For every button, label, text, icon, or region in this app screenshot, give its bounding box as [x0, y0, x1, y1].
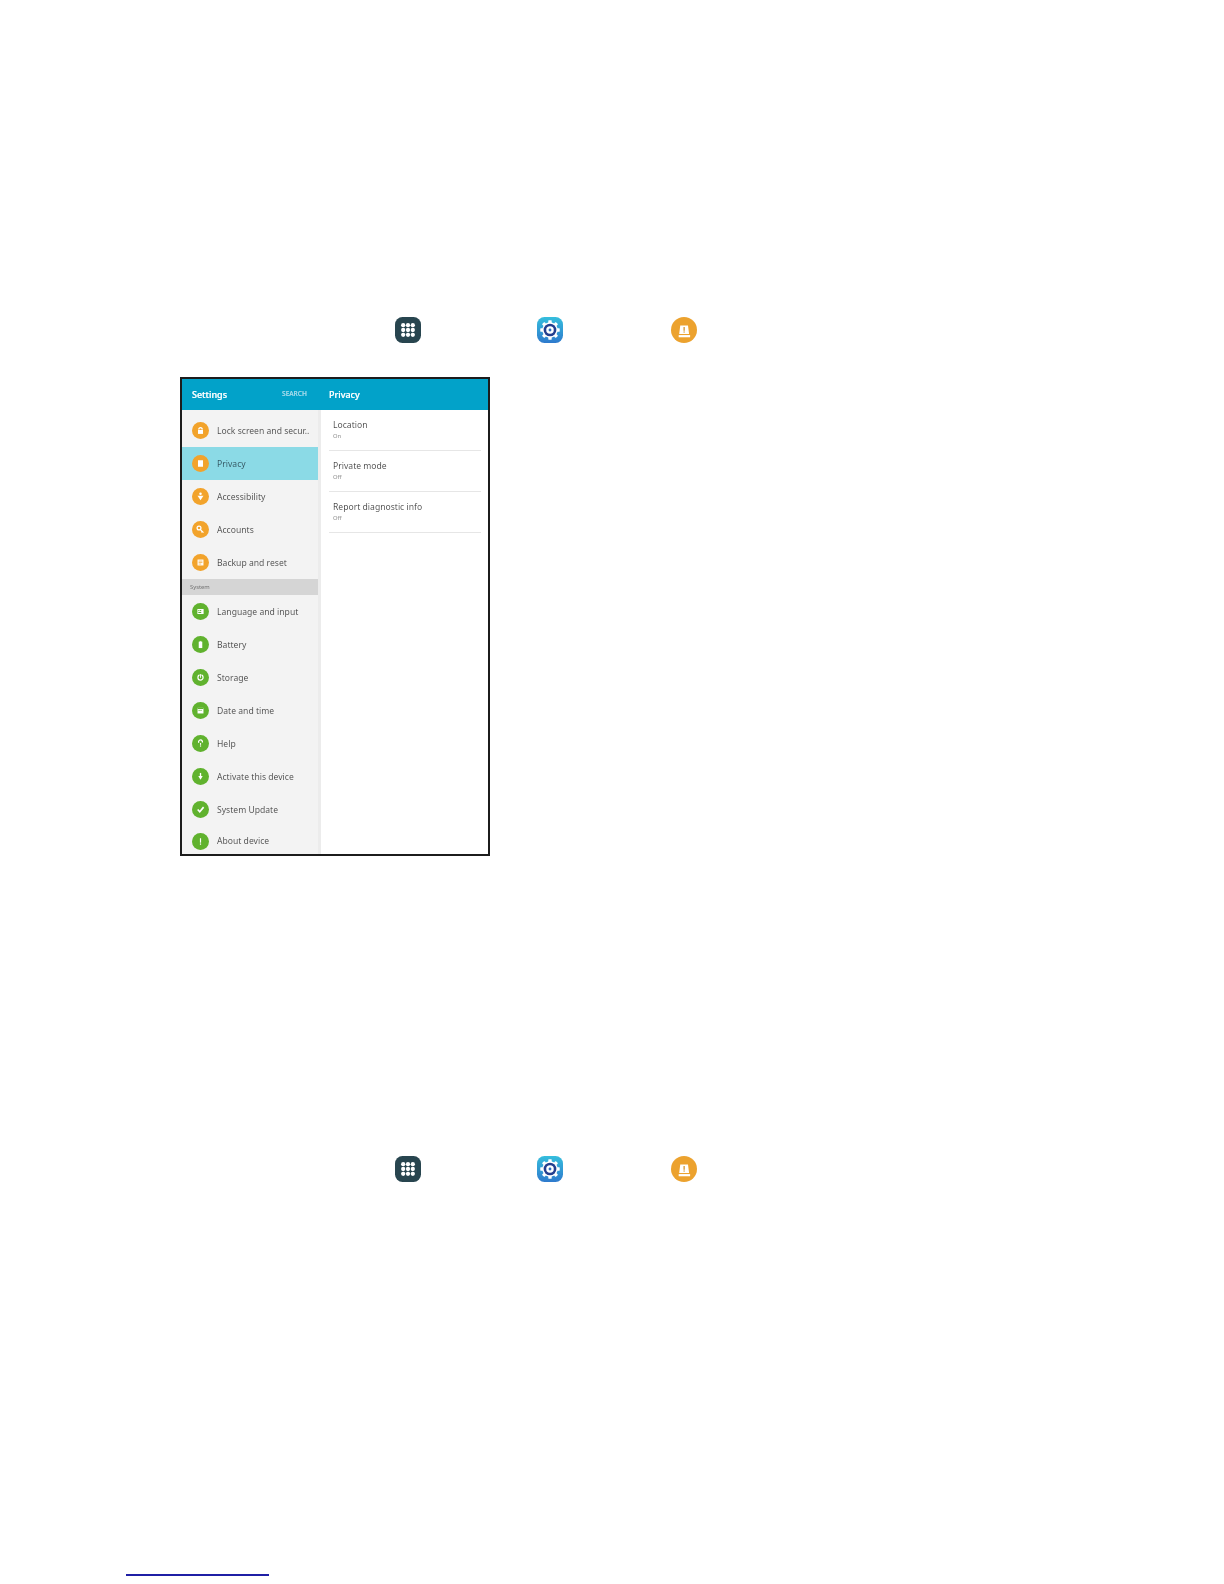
- staticText: Accessibility: [217, 491, 266, 503]
- staticText: Storage: [217, 672, 249, 684]
- staticText: Privacy: [329, 388, 360, 400]
- staticText: Date and time: [217, 705, 275, 717]
- button[interactable]: Apps: [395, 317, 421, 343]
- button[interactable]: Help: [180, 727, 318, 760]
- staticText: Help: [217, 738, 236, 750]
- button[interactable]: Location: [321, 410, 490, 451]
- staticText: Language and input: [217, 606, 299, 618]
- button[interactable]: Storage: [180, 661, 318, 694]
- staticText: Off: [333, 514, 342, 522]
- staticText: Report diagnostic info: [333, 501, 423, 513]
- staticText: Battery: [217, 639, 247, 651]
- staticText: Accounts: [217, 524, 254, 536]
- button[interactable]: Privacy: [180, 447, 318, 480]
- button[interactable]: Activate this device: [180, 760, 318, 793]
- staticText: Backup and reset: [217, 557, 287, 569]
- button[interactable]: Lock screen and secur..: [180, 414, 318, 447]
- staticText: About device: [217, 835, 270, 847]
- staticText: Off: [333, 473, 342, 481]
- staticText: System: [190, 583, 210, 591]
- staticText: System Update: [217, 804, 279, 816]
- staticText: Settings: [192, 388, 228, 400]
- button[interactable]: Accessibility: [180, 480, 318, 513]
- button[interactable]: Battery: [180, 628, 318, 661]
- button[interactable]: Date and time: [180, 694, 318, 727]
- button[interactable]: Language and input: [180, 595, 318, 628]
- button[interactable]: Privacy: [671, 317, 697, 343]
- staticText: On: [333, 432, 342, 440]
- button[interactable]: About device: [180, 826, 318, 856]
- button[interactable]: Accounts: [180, 513, 318, 546]
- staticText: Lock screen and secur..: [217, 425, 310, 437]
- button[interactable]: Settings: [537, 1156, 563, 1182]
- staticText: Private mode: [333, 460, 387, 472]
- button[interactable]: Private mode: [321, 451, 490, 492]
- button[interactable]: System Update: [180, 793, 318, 826]
- staticText: Privacy: [217, 458, 246, 470]
- staticText: Location: [333, 419, 368, 431]
- button[interactable]: Apps: [395, 1156, 421, 1182]
- button[interactable]: Backup and reset: [180, 546, 318, 579]
- button[interactable]: Report diagnostic info: [321, 492, 490, 533]
- staticText: Activate this device: [217, 771, 294, 783]
- button[interactable]: Privacy: [671, 1156, 697, 1182]
- staticText: SEARCH: [282, 389, 307, 398]
- button[interactable]: Settings: [537, 317, 563, 343]
